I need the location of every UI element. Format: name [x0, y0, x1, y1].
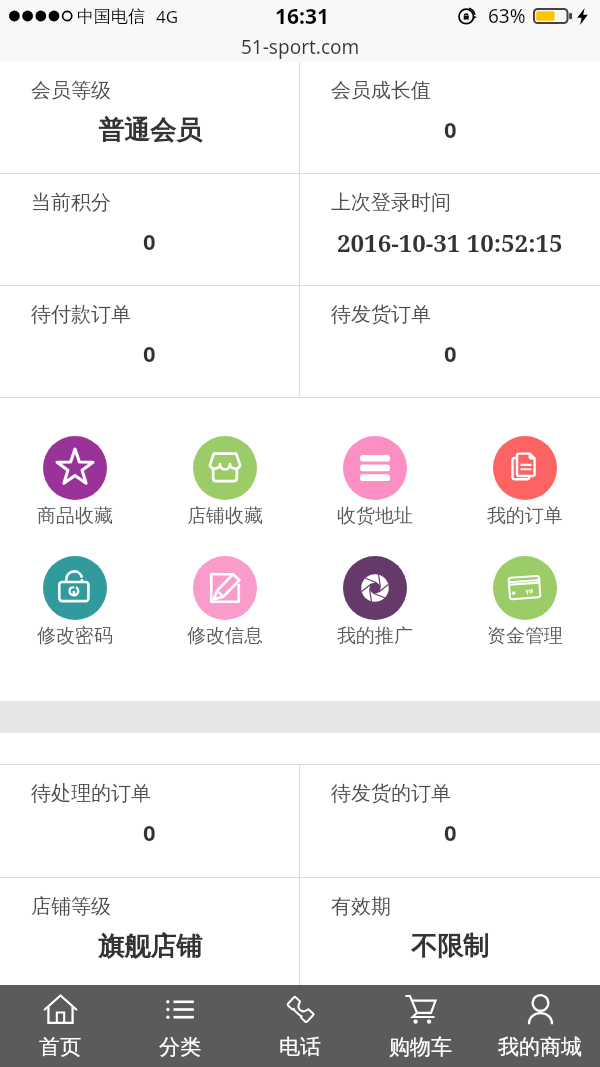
staticText: 中国电信	[77, 6, 145, 27]
staticText: 待发货的订单	[331, 781, 451, 806]
button[interactable]: 有效期	[300, 878, 600, 990]
button[interactable]: 资金管理	[450, 556, 600, 648]
staticText: 商品收藏	[37, 504, 113, 528]
staticText: 分类	[159, 1034, 201, 1060]
staticText: 有效期	[331, 894, 391, 919]
staticText: 我的推广	[337, 624, 413, 648]
staticText: 资金管理	[487, 624, 563, 648]
button[interactable]: 电话	[240, 985, 360, 1067]
staticText: 收货地址	[337, 504, 413, 528]
staticText: 0	[143, 226, 156, 256]
staticText: 当前积分	[31, 190, 111, 215]
staticText: 63%	[488, 3, 526, 29]
button[interactable]: 商品收藏	[0, 436, 150, 528]
button[interactable]: 收货地址	[300, 436, 450, 528]
button[interactable]: 会员成长值	[300, 62, 600, 173]
button[interactable]: 待发货订单	[300, 286, 600, 397]
button[interactable]: 修改密码	[0, 556, 150, 648]
staticText: 旗舰店铺	[98, 930, 202, 963]
button[interactable]: 会员等级	[0, 62, 299, 173]
button[interactable]: 待处理的订单	[0, 765, 299, 877]
staticText: 会员等级	[31, 78, 111, 103]
button[interactable]: 修改信息	[150, 556, 300, 648]
staticText: 普通会员	[98, 114, 202, 147]
staticText: 店铺收藏	[187, 504, 263, 528]
button[interactable]: 我的订单	[450, 436, 600, 528]
staticText: 不限制	[411, 930, 489, 963]
staticText: 我的订单	[487, 504, 563, 528]
button[interactable]: 待付款订单	[0, 286, 299, 397]
staticText: 0	[143, 338, 156, 368]
button[interactable]: 分类	[120, 985, 240, 1067]
staticText: 待处理的订单	[31, 781, 151, 806]
staticText: 2016-10-31 10:52:15	[337, 226, 563, 259]
staticText: 购物车	[389, 1034, 452, 1060]
staticText: 待发货订单	[331, 302, 431, 327]
staticText: 0	[444, 338, 457, 368]
staticText: 店铺等级	[31, 894, 111, 919]
button[interactable]: 我的商城	[480, 985, 600, 1067]
staticText: 4G	[156, 5, 179, 28]
button[interactable]: 店铺等级	[0, 878, 299, 990]
staticText: 首页	[39, 1034, 81, 1060]
button[interactable]: 待发货的订单	[300, 765, 600, 877]
staticText: 16:31	[275, 2, 329, 31]
staticText: 0	[444, 817, 457, 847]
staticText: 修改信息	[187, 624, 263, 648]
staticText: 我的商城	[498, 1034, 582, 1060]
staticText: 0	[444, 114, 457, 144]
button[interactable]: 店铺收藏	[150, 436, 300, 528]
staticText: 上次登录时间	[331, 190, 451, 215]
staticText: 51-sport.com	[241, 34, 360, 60]
staticText: 会员成长值	[331, 78, 431, 103]
staticText: 电话	[279, 1034, 321, 1060]
button[interactable]: 当前积分	[0, 174, 299, 285]
button[interactable]: 我的推广	[300, 556, 450, 648]
button[interactable]: 上次登录时间	[300, 174, 600, 285]
button[interactable]: 购物车	[360, 985, 480, 1067]
staticText: 修改密码	[37, 624, 113, 648]
staticText: 待付款订单	[31, 302, 131, 327]
staticText: 0	[143, 817, 156, 847]
button[interactable]: 首页	[0, 985, 120, 1067]
